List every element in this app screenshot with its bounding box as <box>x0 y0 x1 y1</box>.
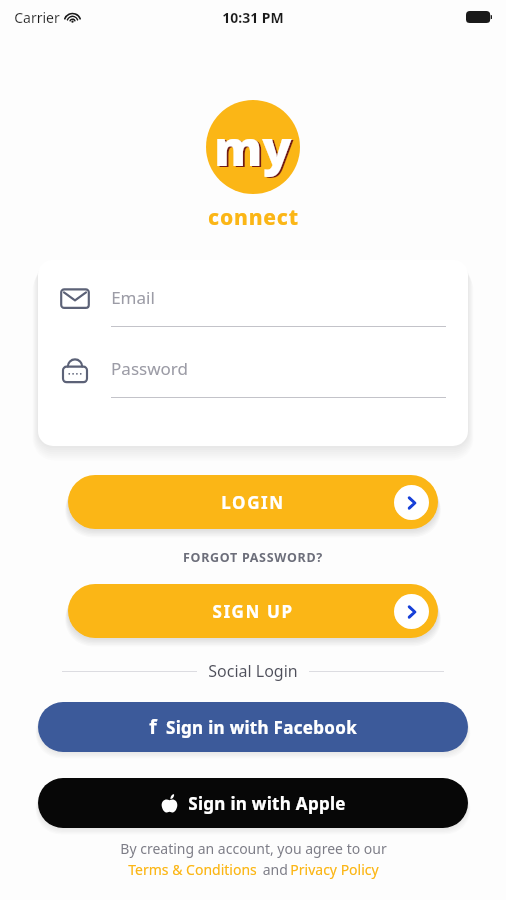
staticText: and <box>257 860 290 879</box>
button[interactable]: Password <box>38 354 468 398</box>
button[interactable]: SIGN UP <box>68 584 438 638</box>
button[interactable]: Terms & Conditions <box>128 860 257 879</box>
staticText: Carrier <box>14 8 60 27</box>
staticText: Social Login <box>208 660 298 682</box>
staticText: Password <box>111 357 188 380</box>
staticText: SIGN UP <box>212 600 294 623</box>
staticText: Sign in with Apple <box>188 792 346 815</box>
button[interactable]: Privacy Policy <box>290 860 379 879</box>
staticText: 10:31 PM <box>222 8 284 27</box>
staticText: f <box>149 714 157 740</box>
staticText: my <box>214 115 292 180</box>
button[interactable]: Email <box>38 283 468 327</box>
button[interactable]: Sign in with Apple <box>38 778 468 828</box>
staticText: Sign in with Facebook <box>166 716 357 739</box>
staticText: Privacy Policy <box>290 860 379 879</box>
staticText: Terms & Conditions <box>128 860 257 879</box>
button[interactable]: LOGIN <box>68 475 438 529</box>
staticText: Email <box>111 286 155 309</box>
staticText: By creating an account, you agree to our <box>120 839 387 858</box>
other: Email <box>60 283 90 313</box>
staticText: LOGIN <box>221 491 285 514</box>
staticText: connect <box>208 203 299 232</box>
staticText: my <box>216 116 294 181</box>
other: Password <box>60 354 90 384</box>
staticText: FORGOT PASSWORD? <box>183 549 323 566</box>
button[interactable]: f <box>38 702 468 752</box>
button[interactable]: FORGOT PASSWORD? <box>169 545 337 570</box>
